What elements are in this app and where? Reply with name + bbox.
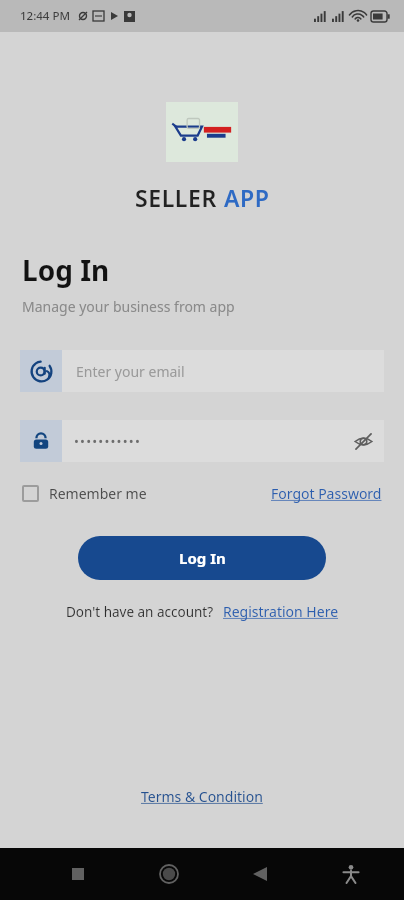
button[interactable]: Forgot Password	[271, 484, 382, 503]
button[interactable]: Registration Here	[223, 602, 339, 621]
staticText: Don't have an account?	[66, 603, 214, 621]
button[interactable]: Back	[238, 852, 282, 896]
staticText: Log In	[22, 251, 110, 289]
button[interactable]: Show password	[342, 420, 384, 462]
staticText: Enter your email	[76, 362, 185, 381]
staticText: Registration Here	[223, 602, 339, 621]
staticText: APP	[224, 182, 270, 213]
button[interactable]: Terms & Condition	[141, 787, 263, 806]
staticText: SELLER	[135, 182, 224, 213]
staticText: Terms & Condition	[141, 787, 263, 806]
staticText: 12:44 PM	[20, 8, 71, 24]
staticText: •••••••••••	[74, 432, 342, 450]
staticText: Log In	[179, 548, 226, 568]
button[interactable]: Recent apps	[56, 852, 100, 896]
staticText: Manage your business from app	[22, 297, 235, 316]
staticText: Remember me	[49, 484, 147, 503]
staticText: Forgot Password	[271, 484, 382, 503]
button[interactable]: Remember me	[22, 484, 147, 503]
button[interactable]: Enter your email	[20, 350, 384, 392]
button[interactable]: •••••••••••	[20, 420, 384, 462]
button[interactable]: Log In	[78, 536, 326, 580]
button[interactable]: Home	[147, 852, 191, 896]
button[interactable]: Accessibility	[329, 852, 373, 896]
